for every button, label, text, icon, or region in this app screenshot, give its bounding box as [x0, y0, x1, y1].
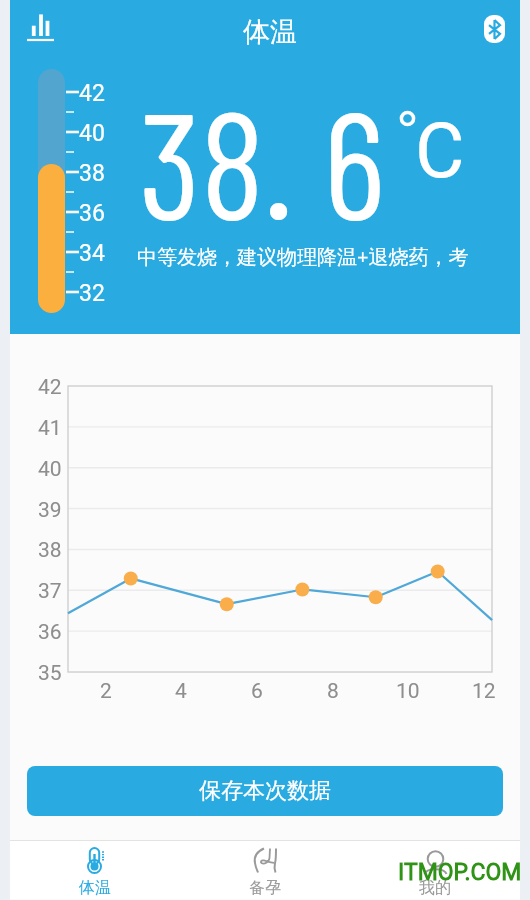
- staticText: 42: [38, 375, 62, 400]
- staticText: 37: [38, 579, 62, 604]
- staticText: 4: [175, 679, 187, 704]
- staticText: 34: [79, 240, 105, 267]
- staticText: C: [415, 106, 465, 195]
- button[interactable]: 保存本次数据: [27, 766, 503, 816]
- staticText: 体温: [243, 15, 297, 49]
- staticText: 42: [79, 80, 105, 107]
- button[interactable]: 我的: [350, 841, 520, 899]
- staticText: 我的: [419, 878, 451, 898]
- staticText: 12: [472, 679, 496, 704]
- button[interactable]: [484, 15, 505, 43]
- staticText: 保存本次数据: [199, 777, 331, 805]
- staticText: 40: [79, 120, 105, 147]
- staticText: 10: [396, 679, 420, 704]
- staticText: 体温: [79, 878, 111, 898]
- button[interactable]: 备孕: [180, 841, 350, 899]
- staticText: 38. 6: [139, 69, 386, 250]
- staticText: 38: [38, 538, 62, 563]
- staticText: 40: [38, 457, 62, 482]
- staticText: 6: [251, 679, 263, 704]
- staticText: 39: [38, 498, 62, 523]
- staticText: 备孕: [249, 878, 281, 898]
- staticText: ITMOP.COM: [398, 859, 522, 886]
- staticText: 2: [100, 679, 112, 704]
- staticText: 38: [79, 160, 105, 187]
- staticText: 中等发烧，建议物理降温+退烧药，考: [137, 243, 469, 270]
- staticText: 36: [79, 200, 105, 227]
- button[interactable]: [27, 8, 68, 48]
- staticText: 35: [38, 661, 62, 686]
- staticText: 32: [79, 280, 105, 307]
- staticText: 36: [38, 620, 62, 645]
- staticText: 8: [327, 679, 339, 704]
- button[interactable]: 体温: [10, 841, 180, 899]
- staticText: 41: [38, 416, 62, 441]
